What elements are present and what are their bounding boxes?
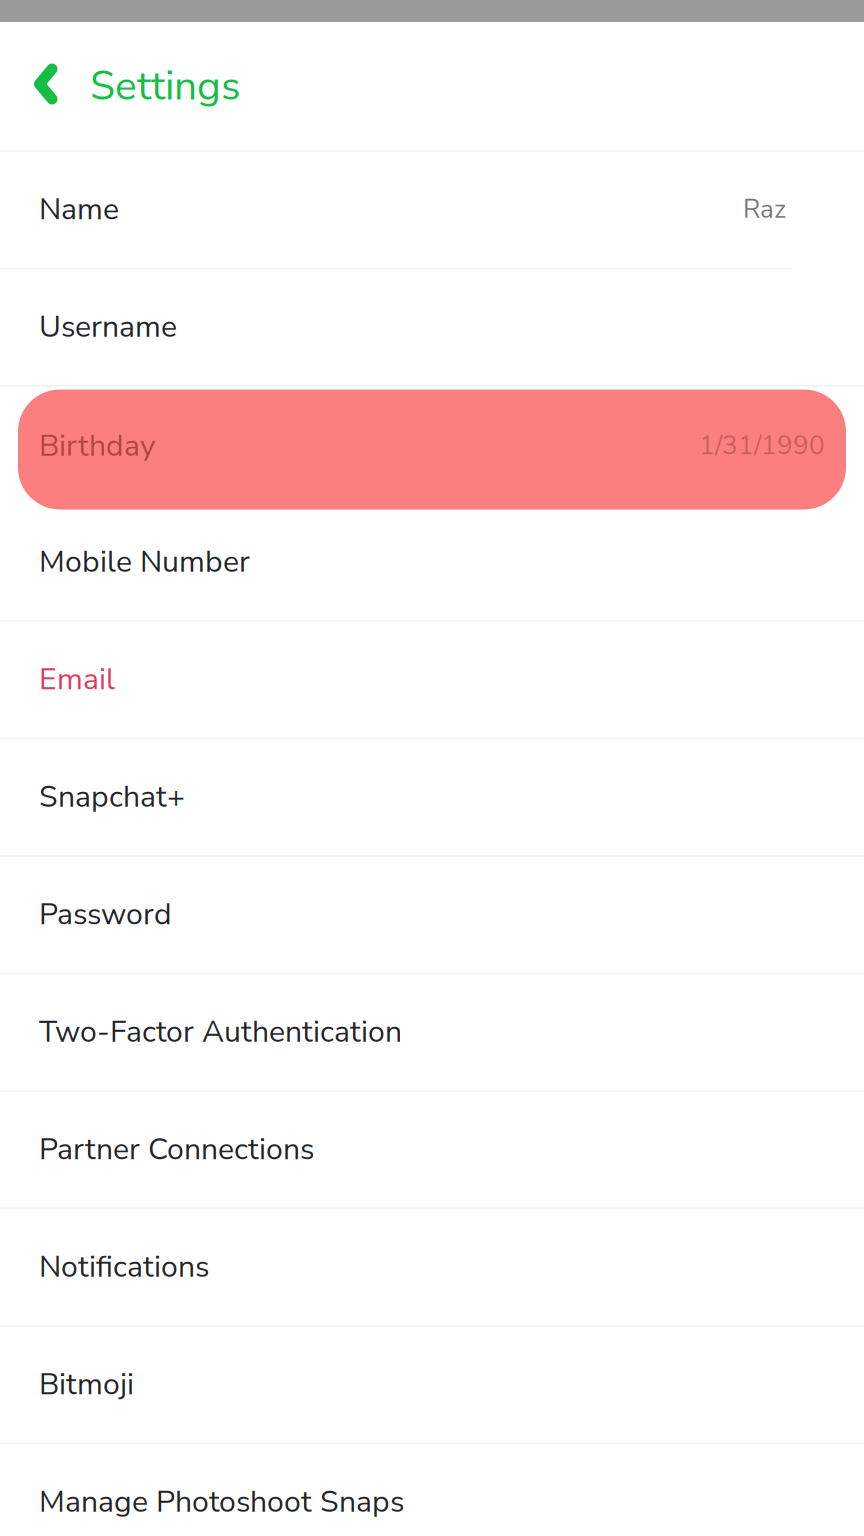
staticText: Notifications [39, 1246, 209, 1287]
button[interactable]: Username [0, 269, 864, 387]
button[interactable]: Two-Factor Authentication [0, 974, 864, 1092]
staticText: Mobile Number [39, 541, 250, 582]
button[interactable]: Email [0, 622, 864, 739]
staticText: Two-Factor Authentication [39, 1011, 402, 1052]
button[interactable]: Notifications [0, 1209, 864, 1327]
staticText: 1/31/1990 [699, 428, 825, 463]
staticText: Snapchat+ [39, 776, 185, 817]
button[interactable]: Name [0, 152, 864, 269]
button[interactable]: Snapchat+ [0, 739, 864, 857]
staticText: Birthday [39, 425, 155, 466]
staticText: Email [39, 659, 115, 700]
button[interactable]: Password [0, 857, 864, 974]
button[interactable]: Bitmoji [0, 1327, 864, 1444]
staticText: Manage Photoshoot Snaps [39, 1481, 404, 1522]
button[interactable]: Manage Photoshoot Snaps [0, 1444, 864, 1536]
staticText: Bitmoji [39, 1364, 134, 1405]
button[interactable]: Birthday [0, 387, 864, 504]
staticText: Partner Connections [39, 1129, 314, 1170]
staticText: Raz [743, 191, 786, 227]
button[interactable]: Mobile Number [0, 504, 864, 622]
button[interactable]: Back to Settings [0, 22, 261, 150]
staticText: Username [39, 306, 177, 347]
staticText: Password [39, 894, 172, 935]
staticText: Settings [90, 58, 241, 114]
staticText: Name [39, 189, 119, 230]
button[interactable]: Partner Connections [0, 1092, 864, 1209]
